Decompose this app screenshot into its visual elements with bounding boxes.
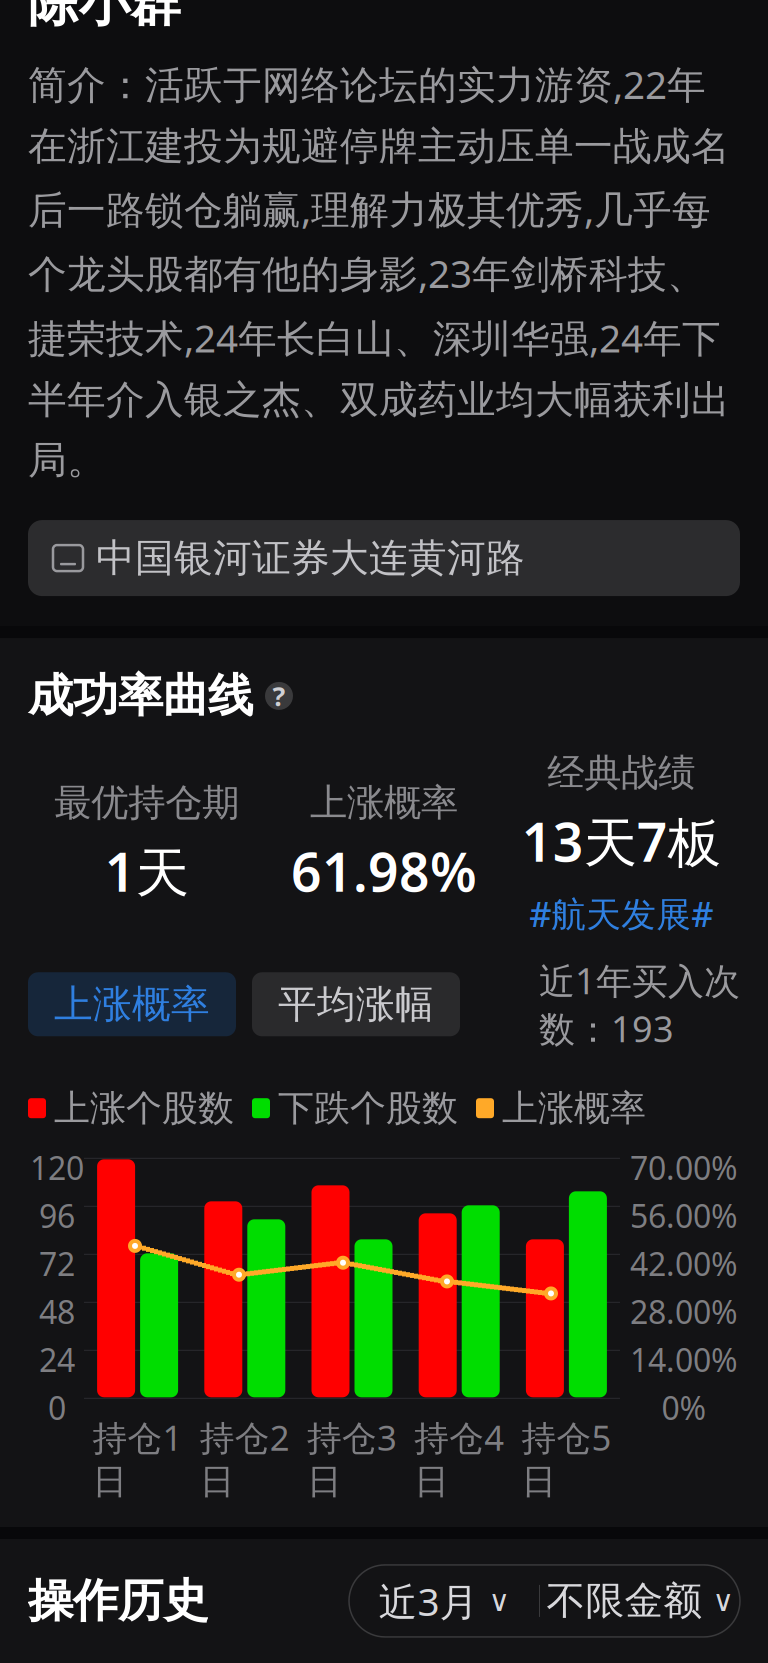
staticText: 下跌个股数	[278, 1086, 458, 1130]
staticText: 120	[30, 1146, 84, 1189]
staticText: 48	[39, 1290, 75, 1333]
staticText: 陈小群	[28, 0, 181, 34]
staticText: 70.00%	[630, 1146, 738, 1189]
staticText: 近3月	[378, 1575, 478, 1627]
staticText: 成功率曲线	[28, 668, 253, 724]
staticText: 持仓1日	[93, 1414, 183, 1503]
staticText: 经典战绩	[547, 750, 695, 796]
staticText: 持仓3日	[307, 1414, 397, 1503]
staticText: 持仓5日	[521, 1414, 611, 1503]
staticText: 96	[39, 1194, 75, 1237]
staticText: 最优持仓期	[54, 780, 239, 826]
staticText: 61.98%	[291, 836, 477, 906]
staticText: 上涨个股数	[54, 1086, 234, 1130]
staticText: 持仓4日	[414, 1414, 504, 1503]
button[interactable]: 上涨概率	[28, 972, 236, 1036]
staticText: #航天发展#	[529, 890, 713, 936]
button[interactable]: Help	[265, 682, 293, 710]
staticText: 上涨概率	[310, 780, 458, 826]
staticText: 不限金额	[546, 1577, 702, 1625]
staticText: 持仓2日	[200, 1414, 290, 1503]
staticText: ?	[272, 678, 285, 714]
button[interactable]: 中国银河证券大连黄河路	[28, 520, 740, 596]
staticText: 0	[48, 1386, 66, 1429]
button[interactable]: 平均涨幅	[252, 972, 460, 1036]
button[interactable]: 不限金额	[540, 1565, 740, 1637]
staticText: ∨	[712, 1584, 733, 1618]
staticText: 0%	[661, 1386, 706, 1429]
staticText: 操作历史	[28, 1573, 208, 1629]
staticText: 24	[39, 1338, 75, 1381]
staticText: 上涨概率	[54, 980, 210, 1028]
staticText: 72	[39, 1242, 75, 1285]
staticText: 56.00%	[630, 1194, 738, 1237]
staticText: 1天	[105, 836, 189, 906]
staticText: 近1年买入次数：193	[539, 956, 740, 1052]
staticText: 28.00%	[630, 1290, 738, 1333]
staticText: ∨	[488, 1584, 509, 1618]
staticText: 13天7板	[522, 806, 721, 876]
staticText: 上涨概率	[502, 1086, 646, 1130]
staticText: 42.00%	[630, 1242, 738, 1285]
button[interactable]: 近3月	[349, 1565, 539, 1637]
staticText: 平均涨幅	[278, 980, 434, 1028]
staticText: 14.00%	[630, 1338, 738, 1381]
staticText: 中国银河证券大连黄河路	[96, 534, 525, 582]
staticText: 简介：活跃于网络论坛的实力游资,22年在浙江建投为规避停牌主动压单一战成名后一路…	[28, 58, 730, 484]
